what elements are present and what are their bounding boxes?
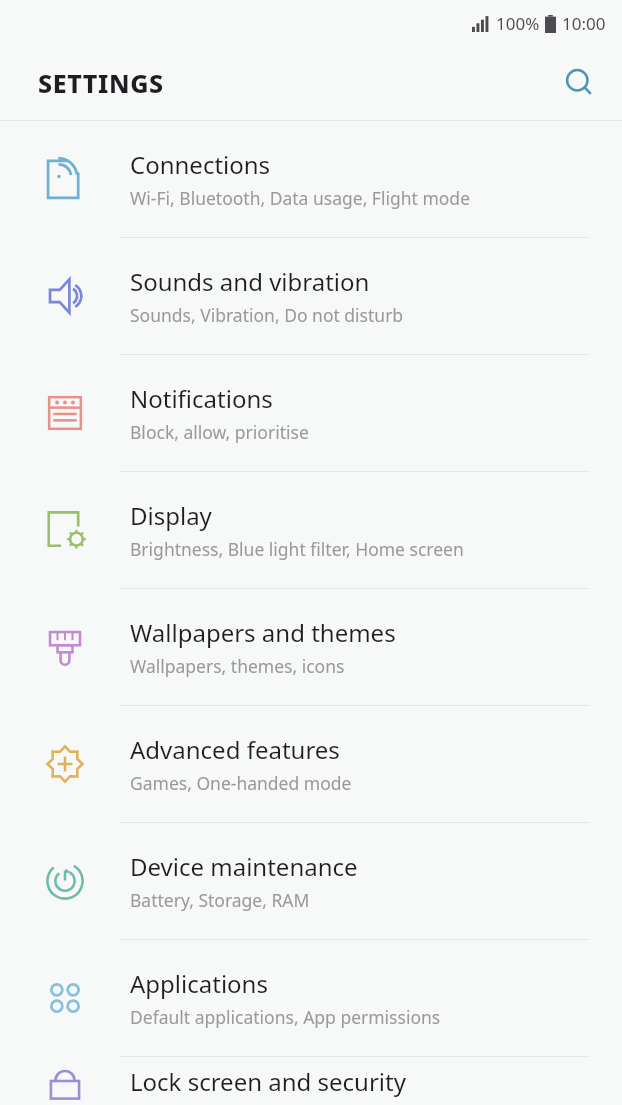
button[interactable]: Connections xyxy=(0,121,622,237)
staticText: Display xyxy=(130,499,212,532)
staticText: Sounds, Vibration, Do not disturb xyxy=(130,303,404,327)
button[interactable]: Sounds and vibration xyxy=(0,238,622,354)
staticText: Device maintenance xyxy=(130,850,358,883)
button[interactable]: Wallpapers and themes xyxy=(0,589,622,705)
staticText: 100% xyxy=(496,12,540,35)
button[interactable]: Device maintenance xyxy=(0,823,622,939)
staticText: Lock screen and security xyxy=(130,1065,406,1098)
staticText: 10:00 xyxy=(562,12,606,35)
button[interactable]: Lock screen and security xyxy=(0,1057,622,1105)
button[interactable]: Display xyxy=(0,472,622,588)
staticText: Wi-Fi, Bluetooth, Data usage, Flight mod… xyxy=(130,186,471,210)
button[interactable]: Applications xyxy=(0,940,622,1056)
staticText: Block, allow, prioritise xyxy=(130,420,309,444)
staticText: SETTINGS xyxy=(38,66,164,100)
button[interactable]: Advanced features xyxy=(0,706,622,822)
staticText: Sounds and vibration xyxy=(130,265,370,298)
staticText: Games, One-handed mode xyxy=(130,771,352,795)
staticText: Wallpapers, themes, icons xyxy=(130,654,345,678)
staticText: Wallpapers and themes xyxy=(130,616,396,649)
staticText: Advanced features xyxy=(130,733,340,766)
staticText: Applications xyxy=(130,967,268,1000)
staticText: Notifications xyxy=(130,382,273,415)
staticText: Default applications, App permissions xyxy=(130,1005,441,1029)
staticText: Brightness, Blue light filter, Home scre… xyxy=(130,537,464,561)
button[interactable]: Search xyxy=(552,55,608,111)
button[interactable]: Notifications xyxy=(0,355,622,471)
staticText: Battery, Storage, RAM xyxy=(130,888,310,912)
staticText: Connections xyxy=(130,148,271,181)
